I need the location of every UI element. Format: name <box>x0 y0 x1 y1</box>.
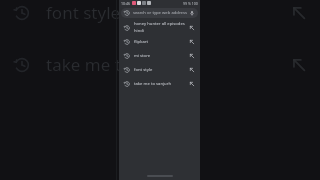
button[interactable]: font style <box>119 63 200 77</box>
button[interactable]: flipkart <box>119 35 200 49</box>
staticText: 99 % 100 <box>183 1 198 6</box>
staticText: mi store <box>134 53 151 59</box>
staticText: hindi <box>134 28 144 34</box>
button[interactable]: Fill in suggestion <box>189 53 195 59</box>
button[interactable]: Fill in suggestion <box>189 25 195 31</box>
staticText: take me to sanjurh <box>134 81 171 87</box>
staticText: take me to s <box>46 53 144 76</box>
button[interactable]: search or type web address <box>121 8 198 18</box>
staticText: honey hunter all episodes downloaded <box>134 21 186 27</box>
staticText: search or type web address <box>133 10 187 16</box>
button[interactable]: Fill in suggestion <box>189 67 195 73</box>
staticText: font style <box>46 1 121 24</box>
staticText: flipkart <box>134 39 149 45</box>
button[interactable]: Fill in suggestion <box>189 39 195 45</box>
button[interactable]: Fill in suggestion <box>189 81 195 87</box>
button[interactable]: take me to sanjurh <box>119 77 200 91</box>
button[interactable]: mi store <box>119 49 200 63</box>
button[interactable]: honey hunter all episodes downloaded <box>119 20 200 35</box>
staticText: 10:46 <box>121 1 130 6</box>
staticText: font style <box>134 67 153 73</box>
button[interactable]: Voice search <box>189 10 195 16</box>
